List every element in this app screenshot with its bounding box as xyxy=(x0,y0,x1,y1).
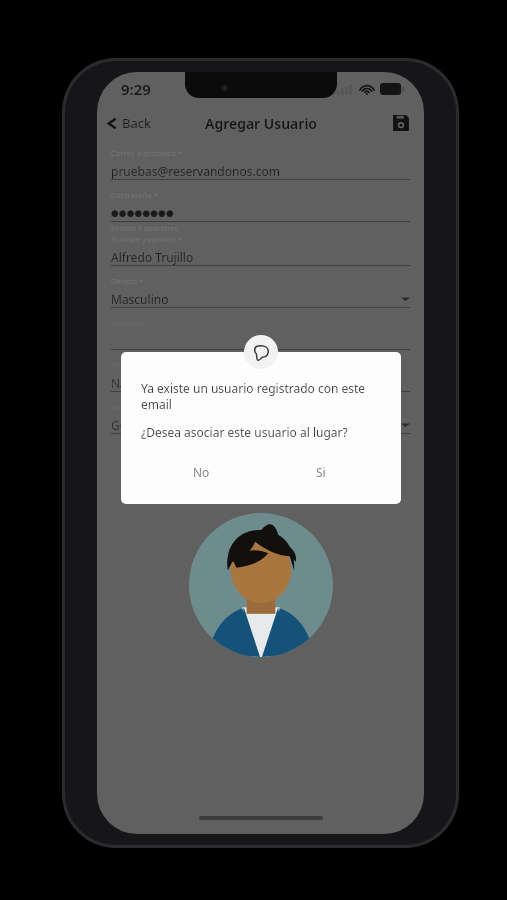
staticText: Rol * xyxy=(111,402,129,412)
button[interactable]: No xyxy=(141,458,261,486)
staticText: ●●●●●●●● xyxy=(111,208,174,218)
staticText: Gerente xyxy=(111,417,157,433)
staticText: Si xyxy=(316,464,326,480)
staticText: Alfredo Trujillo xyxy=(111,249,194,265)
staticText: NA xyxy=(111,375,128,391)
staticText: Teléfono * xyxy=(111,360,148,370)
staticText: No xyxy=(193,464,210,480)
staticText: Agregar Usuario xyxy=(205,114,317,133)
staticText: Masculino xyxy=(111,291,169,307)
staticText: pruebas@reservandonos.com xyxy=(111,163,280,179)
staticText: ¿Desea asociar este usuario al lugar? xyxy=(141,424,348,440)
staticText: Género * xyxy=(111,276,144,286)
button[interactable]: Si xyxy=(261,458,381,486)
staticText: Contraseña * xyxy=(111,190,158,200)
staticText: Back xyxy=(122,114,151,132)
staticText: Nombre y apellido * xyxy=(111,234,182,244)
button[interactable]: Back xyxy=(97,110,159,136)
staticText: Mínimo 8 caracteres xyxy=(111,224,178,234)
button[interactable]: Guardar xyxy=(388,110,414,136)
staticText: 9:29 xyxy=(121,79,151,99)
staticText: Dirección xyxy=(111,318,144,328)
staticText: Ya existe un usuario registrado con este… xyxy=(141,380,381,413)
staticText: Notificar por: xyxy=(111,454,410,469)
staticText: Correo electrónico * xyxy=(111,148,183,158)
